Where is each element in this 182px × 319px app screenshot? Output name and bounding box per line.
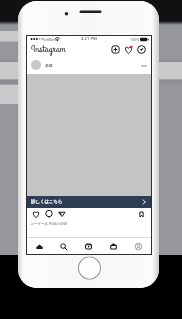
staticText: SoftBank: [43, 37, 58, 42]
staticText: 4:21 PM: [81, 36, 97, 42]
staticText: ユーザー名 投稿の説明: [30, 221, 68, 226]
button[interactable]: More options: [138, 60, 149, 71]
button[interactable]: Comment: [43, 208, 55, 220]
button[interactable]: New post: [109, 43, 122, 56]
staticText: 100%: [130, 37, 140, 42]
button[interactable]: 名前: [27, 56, 151, 74]
button[interactable]: Shop: [101, 238, 126, 254]
staticText: 詳しくはこちら: [31, 199, 63, 205]
button[interactable]: Messages: [135, 43, 148, 56]
button[interactable]: Share: [56, 208, 68, 220]
button[interactable]: Reels: [76, 238, 101, 254]
staticText: 名前: [45, 63, 53, 68]
button[interactable]: Profile: [126, 238, 151, 254]
staticText: Instagram: [31, 42, 66, 56]
button[interactable]: Activity: [122, 43, 135, 56]
button[interactable]: Like: [30, 208, 42, 220]
button[interactable]: Home: [27, 238, 51, 254]
button[interactable]: Search: [51, 238, 76, 254]
button[interactable]: 詳しくはこちら: [27, 196, 151, 208]
button[interactable]: Save: [135, 208, 147, 220]
